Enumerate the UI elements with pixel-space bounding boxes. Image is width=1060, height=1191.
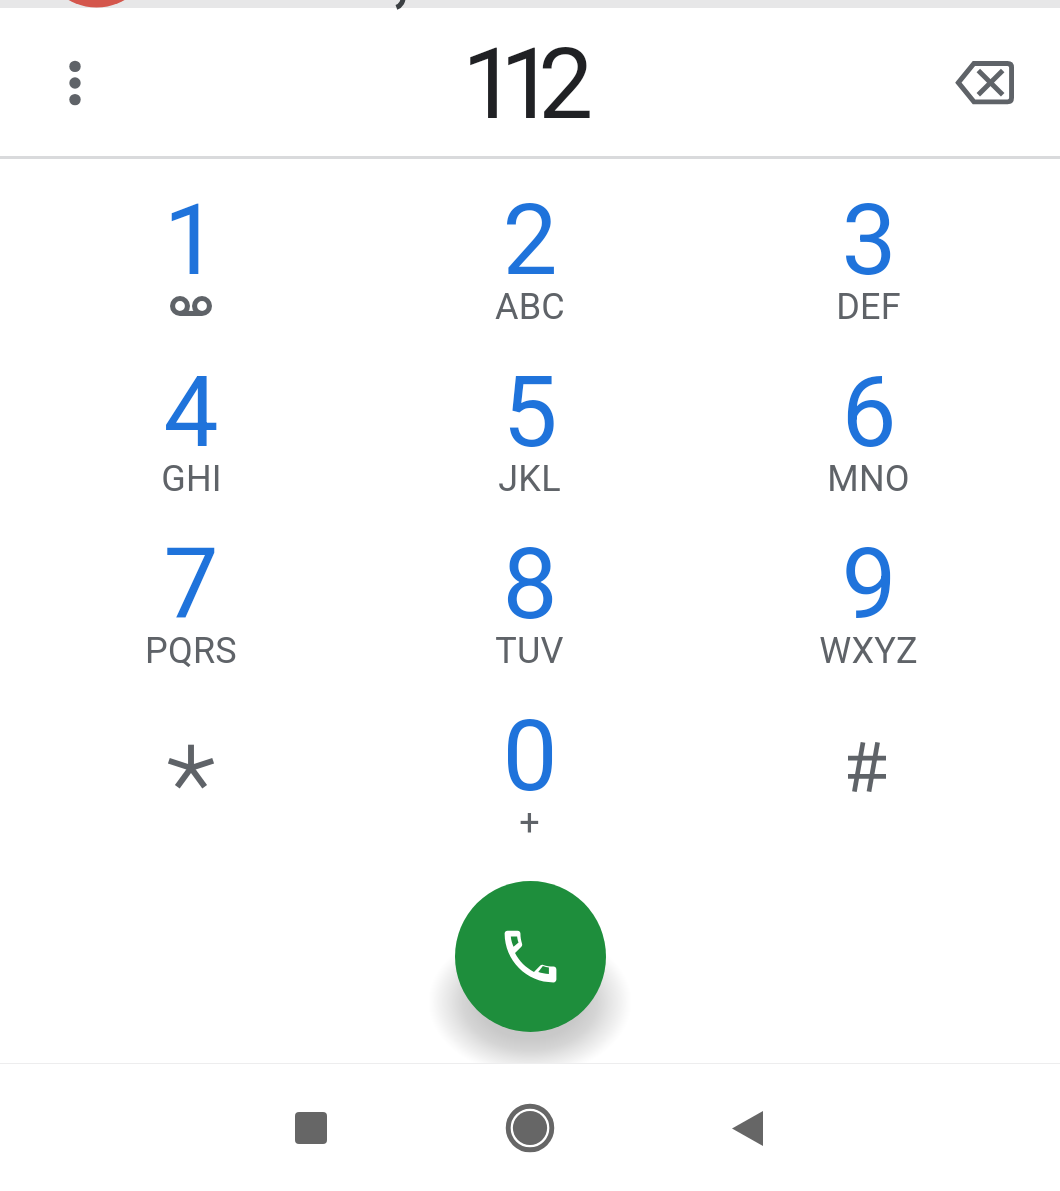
staticText: 4 — [163, 355, 219, 470]
button[interactable]: 0 — [360, 690, 699, 862]
button[interactable]: 1 — [22, 174, 360, 346]
button[interactable]: More options — [40, 48, 110, 118]
button[interactable]: 3 — [699, 174, 1038, 346]
staticText: 0 — [502, 699, 558, 814]
button[interactable]: Backspace — [945, 43, 1025, 123]
staticText: DEF — [836, 286, 901, 328]
button[interactable]: 6 — [699, 346, 1038, 518]
staticText: + — [519, 802, 540, 844]
button[interactable]: Recent apps — [270, 1087, 352, 1169]
staticText: 3 — [841, 183, 897, 298]
staticText: 9 — [841, 527, 897, 642]
button[interactable]: Call — [455, 881, 606, 1032]
button[interactable]: pound — [699, 690, 1038, 862]
button[interactable]: Home — [489, 1087, 571, 1169]
staticText: PQRS — [145, 630, 237, 672]
staticText: 2 — [502, 183, 558, 298]
button[interactable]: Back — [706, 1087, 788, 1169]
staticText: 5 — [502, 355, 558, 470]
staticText: 7 — [163, 527, 219, 642]
staticText: WXYZ — [819, 630, 918, 672]
staticText: 8 — [502, 527, 558, 642]
staticText: TUV — [495, 630, 564, 672]
staticText: 112 — [462, 27, 577, 142]
button[interactable]: star — [22, 690, 360, 862]
button[interactable]: 8 — [360, 518, 699, 690]
button[interactable]: 5 — [360, 346, 699, 518]
button[interactable]: 7 — [22, 518, 360, 690]
button[interactable]: 9 — [699, 518, 1038, 690]
staticText: MNO — [827, 458, 910, 500]
staticText: JKL — [498, 458, 561, 500]
staticText: 1 — [163, 183, 219, 298]
button[interactable]: 4 — [22, 346, 360, 518]
button[interactable]: 2 — [360, 174, 699, 346]
staticText: 6 — [841, 355, 897, 470]
staticText: ABC — [495, 286, 565, 328]
staticText: GHI — [161, 458, 222, 500]
